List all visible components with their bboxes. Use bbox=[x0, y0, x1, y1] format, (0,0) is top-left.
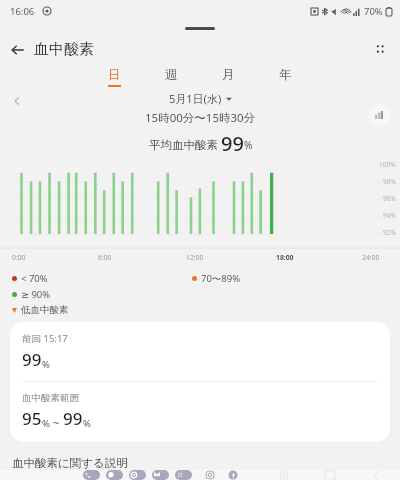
staticText: ≥ 90% bbox=[21, 288, 51, 301]
staticText: % bbox=[42, 358, 50, 371]
staticText: 5月1日(水) bbox=[169, 91, 222, 106]
staticText: 99 bbox=[221, 130, 244, 152]
staticText: 95 bbox=[22, 407, 42, 430]
button[interactable]: Facebook bbox=[228, 470, 245, 480]
button[interactable]: Mail bbox=[152, 470, 169, 480]
staticText: 96% bbox=[383, 194, 396, 203]
staticText: 前回 15:17 bbox=[22, 332, 68, 345]
button[interactable]: Phone bbox=[83, 470, 100, 480]
button[interactable]: 日 bbox=[102, 67, 127, 87]
staticText: 94% bbox=[383, 211, 396, 220]
button[interactable]: More options bbox=[368, 37, 392, 61]
staticText: < 70% bbox=[21, 272, 48, 285]
staticText: 70% bbox=[364, 5, 383, 18]
staticText: 血中酸素に関する説明 bbox=[12, 456, 128, 470]
button[interactable]: 月 bbox=[216, 67, 241, 87]
staticText: 0:00 bbox=[12, 253, 26, 262]
button[interactable]: Measure bbox=[368, 104, 390, 126]
staticText: 週 bbox=[165, 67, 178, 83]
staticText: % bbox=[42, 417, 50, 430]
button[interactable]: Messages bbox=[106, 470, 123, 480]
staticText: 平均血中酸素 bbox=[149, 138, 218, 152]
staticText: 血中酸素範囲 bbox=[22, 392, 79, 404]
staticText: 12:00 bbox=[186, 253, 204, 262]
staticText: 日 bbox=[108, 67, 121, 83]
staticText: 月 bbox=[222, 67, 235, 83]
staticText: % bbox=[244, 138, 253, 152]
staticText: 16:06 bbox=[10, 5, 35, 18]
button[interactable]: 血中酸素範囲 bbox=[10, 382, 390, 442]
button[interactable]: Browser bbox=[129, 470, 146, 480]
button[interactable]: Apps bbox=[175, 470, 192, 480]
button[interactable]: 5月1日(水) bbox=[165, 90, 236, 107]
button[interactable]: 年 bbox=[273, 67, 298, 87]
button[interactable]: 前回 15:17 bbox=[10, 322, 390, 381]
staticText: 15時00分〜15時30分 bbox=[145, 110, 256, 126]
staticText: 70〜89% bbox=[201, 272, 241, 285]
other: Back bbox=[10, 42, 26, 58]
button[interactable]: Instagram bbox=[205, 470, 222, 480]
staticText: % bbox=[83, 417, 91, 430]
button[interactable]: Recent apps bbox=[276, 470, 292, 480]
staticText: 100% bbox=[379, 160, 396, 169]
staticText: 99 bbox=[63, 407, 83, 430]
staticText: 24:00 bbox=[362, 253, 380, 262]
button[interactable]: 週 bbox=[159, 67, 184, 87]
button[interactable]: Previous day bbox=[8, 92, 26, 110]
staticText: 年 bbox=[279, 67, 292, 83]
staticText: 99 bbox=[22, 348, 42, 371]
staticText: 血中酸素 bbox=[34, 40, 94, 59]
staticText: 低血中酸素 bbox=[21, 304, 69, 316]
staticText: 98% bbox=[383, 177, 396, 186]
staticText: 92% bbox=[383, 228, 396, 237]
staticText: ~ bbox=[53, 415, 60, 430]
button[interactable]: Home bbox=[322, 470, 338, 480]
button[interactable]: Back bbox=[6, 37, 98, 62]
staticText: 18:00 bbox=[276, 253, 294, 262]
staticText: 6:00 bbox=[98, 253, 112, 262]
